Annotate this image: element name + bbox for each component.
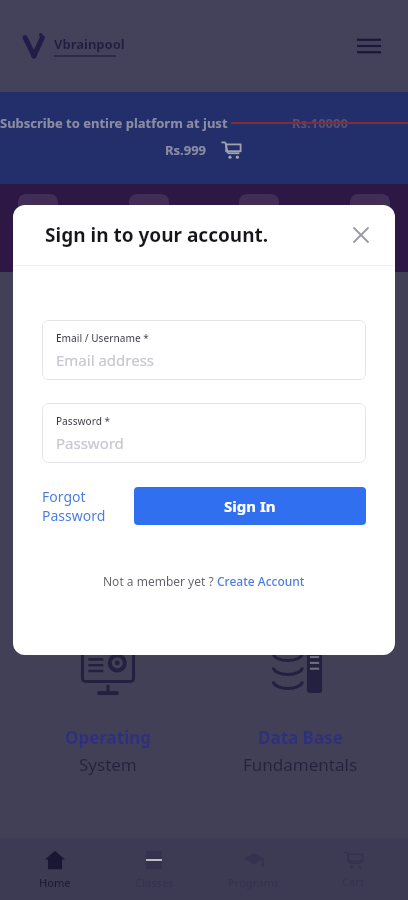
button[interactable]: Data Base bbox=[215, 642, 385, 776]
staticText: Password bbox=[42, 506, 106, 525]
staticText: Rs.999 bbox=[165, 141, 207, 159]
button[interactable] bbox=[350, 194, 390, 234]
staticText: Sign in to your account. bbox=[45, 222, 269, 248]
staticText: Rs.10000 bbox=[292, 114, 348, 132]
staticText: Forgot bbox=[42, 487, 86, 506]
button[interactable]: Cart bbox=[219, 138, 243, 162]
staticText: Operating bbox=[65, 726, 152, 749]
button[interactable]: Menu bbox=[352, 29, 386, 63]
button[interactable] bbox=[239, 194, 279, 234]
staticText: Password * bbox=[56, 414, 111, 428]
staticText: Email address bbox=[56, 350, 155, 370]
button[interactable]: Password * bbox=[42, 403, 366, 463]
button[interactable]: Email / Username * bbox=[42, 320, 366, 380]
button[interactable]: Sign In bbox=[134, 487, 366, 525]
staticText: Not a member yet ? bbox=[103, 573, 217, 589]
button[interactable] bbox=[129, 194, 169, 234]
button[interactable]: Close bbox=[345, 219, 377, 251]
staticText: Password bbox=[56, 433, 124, 453]
staticText: Subscribe to entire platform at just bbox=[0, 114, 231, 132]
button[interactable]: Operating bbox=[23, 642, 193, 776]
staticText: Email / Username * bbox=[56, 331, 149, 345]
button[interactable]: Create Account bbox=[217, 573, 305, 589]
button[interactable] bbox=[18, 194, 58, 234]
button[interactable]: Forgot bbox=[42, 487, 118, 525]
staticText: Create Account bbox=[217, 573, 305, 589]
staticText: Sign In bbox=[224, 496, 276, 516]
staticText: Data Base bbox=[258, 726, 343, 749]
staticText: Home bbox=[39, 875, 71, 890]
staticText: Vbrainpool bbox=[54, 35, 125, 53]
staticText: System bbox=[79, 753, 137, 776]
button[interactable]: Home bbox=[10, 849, 100, 890]
button[interactable]: Classes bbox=[109, 849, 199, 890]
staticText: Fundamentals bbox=[243, 753, 358, 776]
